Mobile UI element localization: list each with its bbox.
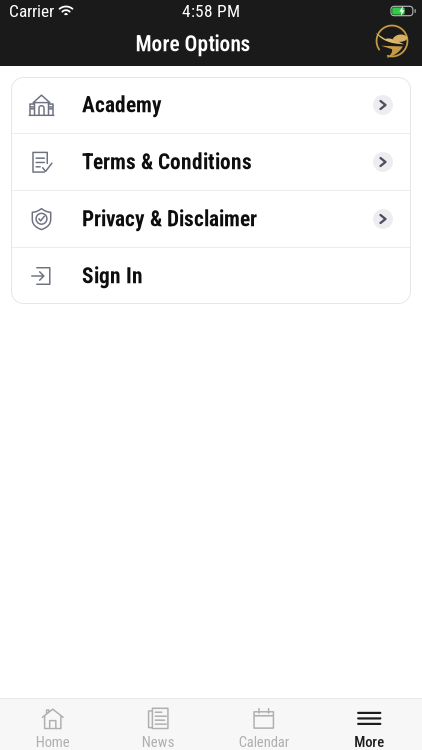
button[interactable]: Sign In <box>11 248 411 304</box>
button[interactable]: Terms & Conditions <box>11 134 411 190</box>
staticText: 4:58 PM <box>182 1 240 21</box>
staticText: Calendar <box>239 733 289 750</box>
staticText: More Options <box>135 31 250 56</box>
staticText: Academy <box>82 92 162 117</box>
button[interactable]: Home <box>0 699 105 750</box>
button[interactable]: News <box>105 699 211 750</box>
staticText: Privacy & Disclaimer <box>82 206 257 231</box>
staticText: News <box>142 733 175 750</box>
button[interactable]: Calendar <box>211 699 316 750</box>
staticText: Home <box>36 733 70 750</box>
button[interactable]: App logo <box>375 24 422 64</box>
staticText: More <box>354 733 384 750</box>
staticText: Terms & Conditions <box>82 149 252 174</box>
button[interactable]: More <box>316 699 422 750</box>
staticText: Carrier <box>9 1 54 21</box>
button[interactable]: Privacy & Disclaimer <box>11 191 411 247</box>
button[interactable]: Academy <box>11 77 411 133</box>
staticText: Sign In <box>82 263 143 288</box>
